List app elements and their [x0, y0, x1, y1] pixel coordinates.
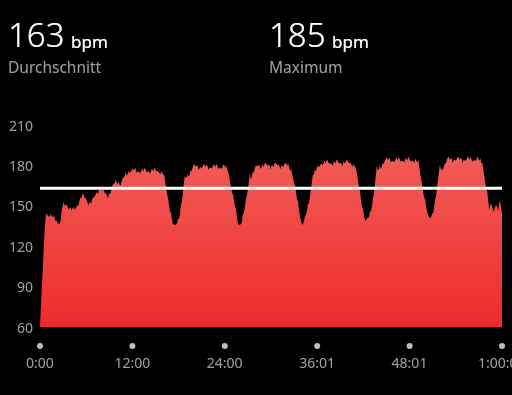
button[interactable]: Heart rate chart	[0, 0, 512, 395]
